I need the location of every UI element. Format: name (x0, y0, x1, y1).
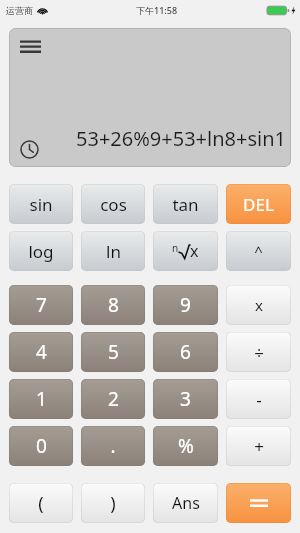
button[interactable]: x (226, 285, 291, 325)
staticText: Ans (172, 492, 200, 514)
staticText: 0 (36, 433, 47, 459)
staticText: x (190, 240, 199, 262)
staticText: tan (172, 193, 199, 216)
button[interactable]: 2 (81, 379, 145, 419)
button[interactable]: 9 (153, 285, 218, 325)
staticText: DEL (243, 193, 274, 216)
button[interactable]: n (153, 231, 218, 271)
staticText: ( (38, 491, 44, 516)
button[interactable]: - (226, 379, 291, 419)
staticText: ^ (254, 241, 263, 261)
button[interactable]: ^ (226, 231, 291, 271)
staticText: + (254, 435, 264, 458)
staticText: n (172, 241, 179, 255)
staticText: 4 (36, 339, 47, 365)
button[interactable]: log (9, 231, 73, 271)
staticText: cos (100, 193, 127, 216)
button[interactable]: tan (153, 184, 218, 224)
button[interactable]: Ans (153, 483, 218, 523)
staticText: log (28, 240, 54, 263)
staticText: 7 (36, 292, 47, 318)
staticText: 6 (180, 339, 191, 365)
staticText: 运营商 (6, 5, 33, 16)
staticText: ) (110, 491, 116, 516)
staticText: 1 (36, 386, 47, 412)
staticText: 53+26%9+53+ln8+sin1 (76, 125, 286, 152)
staticText: sin (29, 193, 53, 216)
button[interactable]: History (16, 136, 42, 162)
button[interactable]: ) (81, 483, 145, 523)
staticText: 2 (108, 386, 119, 412)
button[interactable]: 6 (153, 332, 218, 372)
button[interactable]: Menu (16, 35, 44, 59)
button[interactable]: % (153, 426, 218, 466)
staticText: ÷ (254, 341, 264, 364)
button[interactable]: ÷ (226, 332, 291, 372)
button[interactable] (226, 483, 291, 523)
staticText: 3 (180, 386, 191, 412)
button[interactable]: 5 (81, 332, 145, 372)
staticText: . (110, 433, 116, 459)
staticText: % (178, 433, 194, 459)
staticText: 下午11:58 (136, 4, 178, 16)
button[interactable]: 3 (153, 379, 218, 419)
button[interactable]: 4 (9, 332, 73, 372)
button[interactable]: . (81, 426, 145, 466)
button[interactable]: DEL (226, 184, 291, 224)
staticText: ln (106, 240, 121, 263)
button[interactable]: ln (81, 231, 145, 271)
button[interactable]: cos (81, 184, 145, 224)
button[interactable]: + (226, 426, 291, 466)
button[interactable]: 1 (9, 379, 73, 419)
staticText: 5 (108, 339, 119, 365)
button[interactable]: 7 (9, 285, 73, 325)
button[interactable]: ( (9, 483, 73, 523)
button[interactable]: 0 (9, 426, 73, 466)
staticText: - (256, 388, 262, 411)
button[interactable]: 8 (81, 285, 145, 325)
staticText: 8 (108, 292, 119, 318)
staticText: 9 (180, 292, 191, 318)
staticText: x (255, 295, 263, 315)
button[interactable]: sin (9, 184, 73, 224)
